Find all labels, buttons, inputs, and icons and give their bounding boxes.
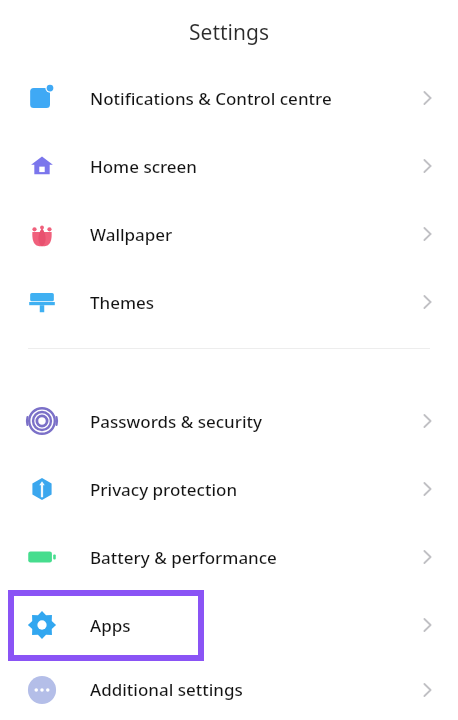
- staticText: Additional settings: [90, 678, 243, 701]
- button[interactable]: Additional settings: [0, 659, 458, 720]
- button[interactable]: Home screen: [0, 132, 458, 200]
- staticText: Wallpaper: [90, 223, 173, 246]
- staticText: Settings: [189, 18, 269, 47]
- button[interactable]: Privacy protection: [0, 455, 458, 523]
- button[interactable]: Apps: [0, 591, 458, 659]
- button[interactable]: Notifications & Control centre: [0, 64, 458, 132]
- button[interactable]: Wallpaper: [0, 200, 458, 268]
- staticText: Passwords & security: [90, 410, 263, 433]
- staticText: Themes: [90, 291, 155, 314]
- staticText: Home screen: [90, 155, 198, 178]
- staticText: Apps: [90, 614, 131, 637]
- staticText: Privacy protection: [90, 478, 238, 501]
- staticText: Notifications & Control centre: [90, 87, 332, 110]
- button[interactable]: Battery & performance: [0, 523, 458, 591]
- staticText: Battery & performance: [90, 546, 277, 569]
- button[interactable]: Passwords & security: [0, 387, 458, 455]
- button[interactable]: Themes: [0, 268, 458, 336]
